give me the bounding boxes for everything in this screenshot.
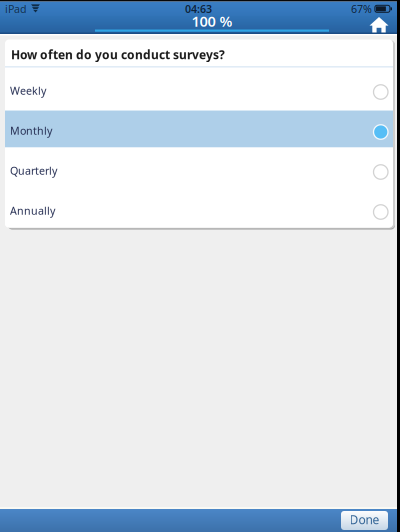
staticText: Annually — [10, 203, 55, 218]
staticText: 04:63 — [185, 2, 212, 16]
staticText: Done — [349, 511, 379, 527]
staticText: Quarterly — [10, 163, 57, 178]
button[interactable]: Quarterly — [5, 147, 393, 187]
button[interactable]: Weekly — [5, 67, 393, 107]
button[interactable]: Annually — [5, 187, 393, 227]
staticText: 67% — [351, 2, 372, 16]
staticText: How often do you conduct surveys? — [11, 46, 225, 62]
staticText: iPad — [5, 2, 27, 16]
button[interactable]: Done — [341, 511, 388, 530]
staticText: Monthly — [10, 123, 52, 138]
staticText: 100 % — [191, 11, 232, 31]
button[interactable]: Home — [361, 16, 397, 34]
staticText: Weekly — [10, 83, 46, 98]
button[interactable]: Monthly — [5, 107, 393, 147]
